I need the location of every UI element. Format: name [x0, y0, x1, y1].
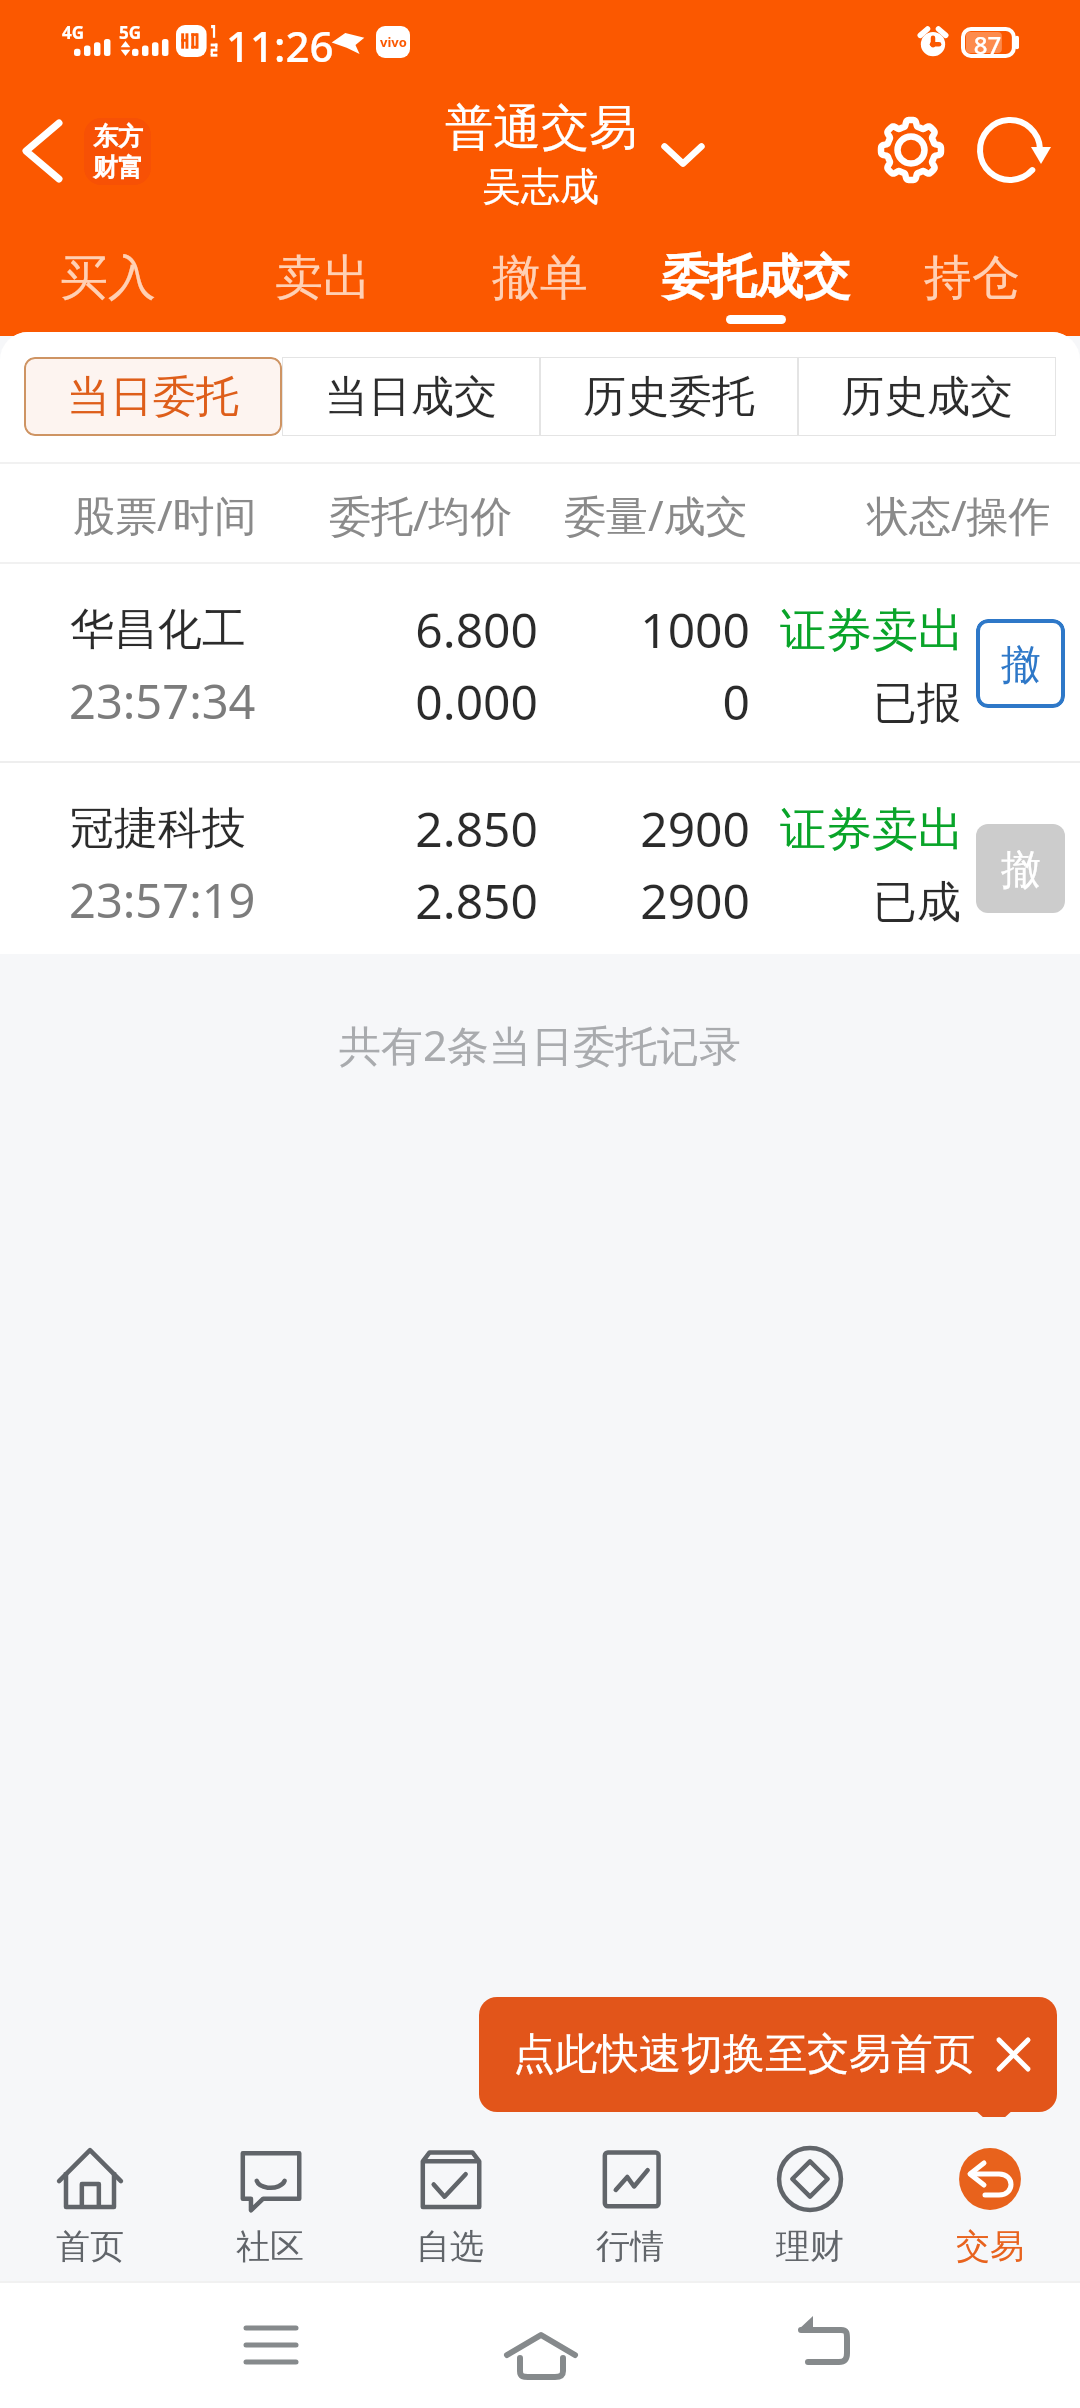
- staticText: 委托成交: [662, 248, 850, 307]
- staticText: 交易: [956, 2225, 1024, 2268]
- staticText: 委量/成交: [564, 486, 748, 543]
- staticText: 首页: [56, 2225, 124, 2268]
- staticText: 2900: [560, 868, 750, 933]
- staticText: 2.850: [270, 868, 538, 933]
- button[interactable]: 委托成交: [648, 236, 864, 332]
- button[interactable]: Back: [10, 108, 78, 194]
- button[interactable]: 撤单: [480, 236, 600, 332]
- staticText: 0: [560, 669, 750, 734]
- button[interactable]: 撤: [976, 824, 1065, 913]
- staticText: 自选: [416, 2225, 484, 2268]
- button[interactable]: 自选: [360, 2117, 540, 2281]
- staticText: 行情: [596, 2225, 664, 2268]
- staticText: 2.850: [270, 796, 538, 861]
- button[interactable]: Refresh: [968, 108, 1052, 192]
- staticText: 委托/均价: [329, 486, 513, 543]
- button[interactable]: 当日成交: [282, 357, 540, 436]
- button[interactable]: 首页: [0, 2117, 180, 2281]
- button[interactable]: 卖出: [263, 236, 383, 332]
- staticText: 当日委托: [67, 370, 239, 424]
- staticText: 点此快速切换至交易首页: [513, 2028, 975, 2081]
- staticText: 历史委托: [583, 370, 755, 424]
- button[interactable]: East Money: [84, 118, 151, 185]
- staticText: 吴志成: [482, 162, 599, 211]
- staticText: 股票/时间: [73, 486, 257, 543]
- staticText: 6.800: [270, 597, 538, 662]
- button[interactable]: 理财: [720, 2117, 900, 2281]
- staticText: 5G: [119, 21, 142, 44]
- staticText: 卖出: [275, 248, 371, 308]
- button[interactable]: Back: [790, 2313, 860, 2373]
- staticText: 东方: [93, 121, 143, 152]
- staticText: 撤: [1001, 639, 1041, 689]
- button[interactable]: 点此快速切换至交易首页: [479, 1997, 1057, 2112]
- staticText: vivo: [380, 33, 407, 51]
- button[interactable]: 历史委托: [540, 357, 798, 436]
- staticText: 证券卖出: [760, 602, 964, 660]
- staticText: 撤: [1001, 844, 1041, 894]
- button[interactable]: 交易: [900, 2117, 1080, 2281]
- staticText: 11:26: [226, 17, 334, 74]
- button[interactable]: 冠捷科技: [0, 763, 1080, 954]
- button[interactable]: Settings: [869, 108, 953, 192]
- staticText: 87: [958, 28, 1017, 59]
- button[interactable]: Recents: [236, 2313, 306, 2373]
- staticText: 4G: [62, 21, 85, 44]
- button[interactable]: Home: [497, 2313, 583, 2373]
- staticText: 持仓: [924, 248, 1020, 308]
- staticText: 0.000: [270, 669, 538, 734]
- staticText: 买入: [60, 248, 156, 308]
- staticText: 共有2条当日委托记录: [0, 1016, 1080, 1073]
- button[interactable]: 撤: [976, 619, 1065, 708]
- staticText: 2900: [560, 796, 750, 861]
- button[interactable]: 历史成交: [798, 357, 1056, 436]
- button[interactable]: 买入: [48, 236, 168, 332]
- other: Close: [995, 2036, 1033, 2074]
- button[interactable]: 华昌化工: [0, 564, 1080, 761]
- button[interactable]: 当日委托: [24, 357, 282, 436]
- staticText: 已成: [760, 875, 961, 930]
- staticText: 23:57:19: [69, 868, 256, 932]
- button[interactable]: 行情: [540, 2117, 720, 2281]
- staticText: 冠捷科技: [70, 801, 246, 856]
- staticText: 历史成交: [841, 370, 1013, 424]
- staticText: 华昌化工: [70, 602, 246, 657]
- staticText: 普通交易: [445, 98, 637, 158]
- button[interactable]: 持仓: [912, 236, 1032, 332]
- staticText: 当日成交: [325, 370, 497, 424]
- staticText: 理财: [776, 2225, 844, 2268]
- button[interactable]: 社区: [180, 2117, 360, 2281]
- staticText: 撤单: [492, 248, 588, 308]
- staticText: 已报: [760, 676, 961, 731]
- staticText: 社区: [236, 2225, 304, 2268]
- staticText: 证券卖出: [760, 801, 964, 859]
- button[interactable]: Switch account: [650, 120, 716, 186]
- staticText: 23:57:34: [69, 669, 256, 733]
- staticText: 状态/操作: [867, 486, 1051, 543]
- staticText: 财富: [93, 152, 143, 183]
- staticText: 1000: [560, 597, 750, 662]
